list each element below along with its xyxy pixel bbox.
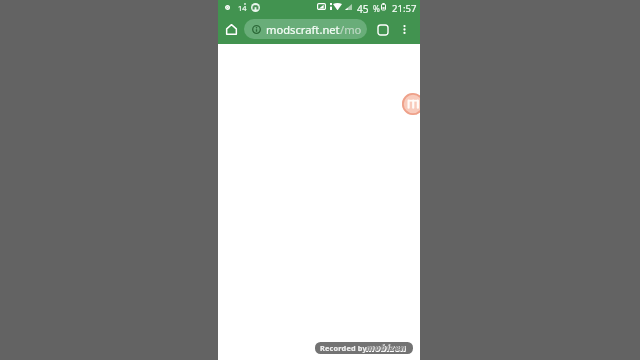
staticText: mobizen — [366, 342, 407, 354]
staticText: 45 — [357, 2, 369, 16]
button[interactable]: More options — [394, 19, 415, 40]
staticText: 14 — [238, 3, 247, 13]
staticText: Recorded by — [320, 343, 367, 353]
button[interactable]: modscraft.net — [244, 19, 367, 39]
staticText: 21:57 — [392, 2, 417, 15]
button[interactable]: Home — [221, 19, 242, 40]
staticText: mobizen — [366, 342, 407, 354]
staticText: % — [373, 3, 380, 14]
staticText: modscraft.net — [266, 22, 340, 37]
staticText: /mo — [340, 22, 362, 37]
button[interactable]: Switch tabs — [372, 19, 393, 40]
